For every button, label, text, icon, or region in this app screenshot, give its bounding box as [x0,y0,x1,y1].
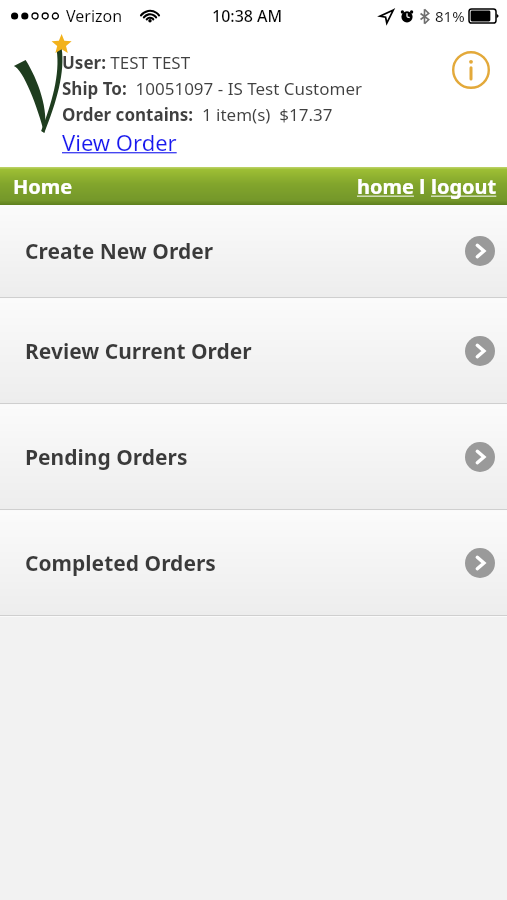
button[interactable]: Information [451,50,491,90]
staticText: Create New Order [25,237,214,266]
button[interactable]: Completed Orders [0,511,507,615]
button[interactable]: home [357,173,414,200]
button[interactable]: logout [431,173,497,200]
staticText: logout [431,173,497,200]
staticText: l [414,173,431,200]
staticText: Completed Orders [25,549,216,578]
staticText: Pending Orders [25,443,188,472]
staticText: Verizon [66,5,123,27]
button[interactable]: Pending Orders [0,405,507,509]
button[interactable]: View Order [62,127,177,157]
button[interactable]: Review Current Order [0,299,507,403]
staticText: View Order [62,127,177,157]
staticText: Review Current Order [25,337,252,366]
staticText: Order contains: 1 item(s) $17.37 [62,103,333,126]
staticText: 10:38 AM [212,5,283,27]
button[interactable]: Home [13,173,73,200]
button[interactable]: Create New Order [0,205,507,297]
staticText: Ship To: 10051097 - IS Test Customer [62,77,363,100]
staticText: Home [13,173,73,200]
staticText: User: TEST TEST [62,51,191,74]
staticText: 81% [435,6,465,26]
staticText: home [357,173,414,200]
